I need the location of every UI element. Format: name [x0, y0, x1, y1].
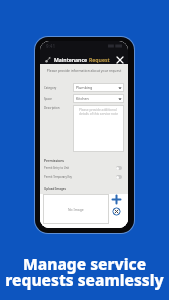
staticText: Description: [44, 106, 60, 110]
staticText: Upload Images: [44, 187, 67, 191]
staticText: Kitchen: [76, 96, 89, 101]
button[interactable]: Add image: [110, 194, 123, 205]
staticText: Category: [44, 86, 57, 90]
staticText: Maintenance: [54, 56, 89, 63]
staticText: Permit Temporary Key: [44, 175, 72, 179]
staticText: 9:41: [46, 43, 55, 49]
staticText: Permissions: [44, 158, 64, 163]
staticText: Permit Entry to Unit: [44, 166, 70, 170]
button[interactable]: Please provide additional details of thi…: [73, 105, 124, 152]
button[interactable]: Permit Entry to Unit: [44, 165, 122, 171]
staticText: Please provide information about your re…: [43, 68, 125, 73]
button[interactable]: No Image: [43, 194, 109, 224]
staticText: Please provide additional details of thi…: [79, 108, 118, 116]
button[interactable]: Kitchen: [73, 94, 124, 103]
button[interactable]: Permit Temporary Key: [44, 174, 122, 180]
staticText: Request: [89, 56, 110, 63]
button[interactable]: Plumbing: [73, 83, 124, 92]
button[interactable]: Remove image: [110, 206, 123, 217]
staticText: No Image: [68, 207, 84, 212]
staticText: Space: [44, 97, 53, 101]
button[interactable]: Close: [115, 55, 124, 64]
staticText: Plumbing: [76, 85, 93, 90]
staticText: Manage service requests seamlessly: [0, 253, 169, 290]
